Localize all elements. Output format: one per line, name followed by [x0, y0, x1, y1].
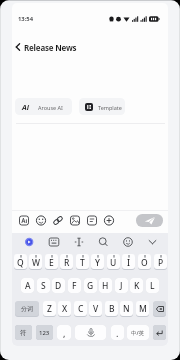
staticText: ,: [63, 327, 66, 339]
button[interactable]: Ai: [15, 98, 72, 115]
button[interactable]: [12, 39, 92, 57]
button[interactable]: U: [107, 254, 120, 269]
button[interactable]: A: [21, 278, 34, 293]
staticText: E: [49, 257, 54, 269]
button[interactable]: X: [58, 301, 71, 316]
staticText: Template: [98, 104, 122, 111]
staticText: 中/英: [131, 329, 145, 337]
button[interactable]: E: [45, 254, 58, 269]
button[interactable]: Template: [79, 98, 125, 115]
staticText: T: [80, 257, 85, 269]
staticText: .: [116, 327, 119, 339]
staticText: 符: [20, 329, 27, 337]
button[interactable]: D: [52, 278, 65, 293]
button[interactable]: 123: [36, 325, 53, 340]
button[interactable]: [86, 214, 99, 227]
staticText: G: [87, 280, 94, 292]
button[interactable]: Y: [91, 254, 104, 269]
button[interactable]: P: [154, 254, 167, 269]
button[interactable]: .: [111, 325, 124, 340]
button[interactable]: R: [60, 254, 73, 269]
button[interactable]: F: [68, 278, 81, 293]
button[interactable]: [52, 214, 65, 227]
button[interactable]: [35, 214, 48, 227]
button[interactable]: M: [136, 301, 149, 316]
staticText: C: [78, 303, 84, 315]
button[interactable]: [122, 236, 134, 248]
button[interactable]: G: [84, 278, 97, 293]
button[interactable]: [69, 214, 82, 227]
button[interactable]: B: [105, 301, 118, 316]
button[interactable]: O: [138, 254, 151, 269]
staticText: I: [127, 257, 131, 269]
staticText: Release News: [24, 42, 77, 53]
button[interactable]: S: [37, 278, 50, 293]
button[interactable]: [147, 236, 159, 248]
staticText: L: [150, 280, 155, 292]
button[interactable]: Q: [14, 254, 27, 269]
button[interactable]: [48, 236, 60, 248]
staticText: A: [25, 280, 31, 292]
button[interactable]: W: [29, 254, 42, 269]
staticText: Ai: [22, 102, 29, 112]
staticText: F: [72, 280, 77, 292]
staticText: Y: [95, 257, 100, 269]
button[interactable]: [136, 214, 163, 227]
staticText: X: [62, 303, 68, 315]
button[interactable]: 中/英: [127, 325, 149, 340]
button[interactable]: [153, 301, 166, 316]
staticText: V: [93, 303, 99, 315]
button[interactable]: [23, 236, 35, 248]
button[interactable]: ,: [57, 325, 71, 340]
staticText: 分词: [21, 305, 33, 313]
staticText: W: [32, 257, 40, 269]
staticText: K: [134, 280, 140, 292]
button[interactable]: 符: [15, 325, 32, 340]
button[interactable]: T: [76, 254, 89, 269]
staticText: H: [102, 280, 109, 292]
button[interactable]: 分词: [15, 301, 39, 316]
button[interactable]: [18, 214, 31, 227]
button[interactable]: [98, 236, 110, 248]
staticText: M: [139, 303, 147, 315]
staticText: P: [158, 257, 164, 269]
staticText: 13:54: [18, 15, 33, 23]
staticText: 123: [39, 329, 50, 337]
staticText: U: [110, 257, 117, 269]
button[interactable]: L: [146, 278, 159, 293]
staticText: B: [109, 303, 115, 315]
staticText: Q: [17, 257, 24, 269]
staticText: J: [120, 280, 123, 292]
button[interactable]: V: [89, 301, 102, 316]
button[interactable]: N: [120, 301, 133, 316]
staticText: R: [64, 257, 70, 269]
button[interactable]: H: [99, 278, 112, 293]
staticText: N: [123, 303, 130, 315]
button[interactable]: J: [115, 278, 128, 293]
staticText: D: [55, 280, 62, 292]
button[interactable]: [103, 214, 116, 227]
staticText: S: [41, 280, 46, 292]
button[interactable]: K: [130, 278, 143, 293]
button[interactable]: [153, 325, 166, 340]
button[interactable]: Z: [43, 301, 56, 316]
button[interactable]: [75, 325, 106, 340]
button[interactable]: C: [74, 301, 87, 316]
button[interactable]: I: [122, 254, 135, 269]
staticText: Arouse AI: [38, 104, 63, 111]
staticText: O: [141, 257, 148, 269]
button[interactable]: [73, 236, 85, 248]
staticText: Z: [47, 303, 52, 315]
